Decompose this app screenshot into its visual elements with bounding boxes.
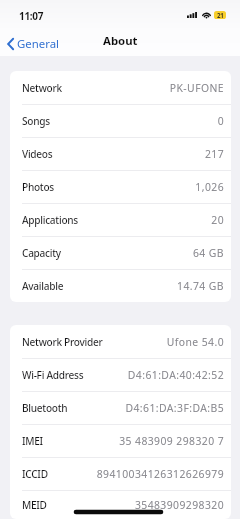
button[interactable]: Bluetooth [10,391,231,424]
button[interactable]: Photos [10,170,231,203]
staticText: 0 [217,114,224,128]
staticText: 21 [217,11,224,19]
button[interactable]: Capacity [10,236,231,269]
staticText: Videos [22,147,53,161]
staticText: IMEI [22,434,43,448]
staticText: ICCID [22,467,48,481]
staticText: Applications [22,213,78,227]
staticText: Capacity [22,246,61,260]
staticText: PK-UFONE [169,81,224,95]
button[interactable]: IMEI [10,424,231,457]
staticText: 35483909298320 [134,498,224,512]
button[interactable]: Available [10,269,231,302]
staticText: 14.74 GB [177,279,224,293]
button[interactable]: Network Provider [10,325,231,358]
button[interactable]: Network [10,71,231,104]
button[interactable]: Songs [10,104,231,137]
button[interactable]: ICCID [10,457,231,490]
staticText: Songs [22,114,50,128]
staticText: 11:07 [19,9,44,23]
staticText: 20 [211,213,224,227]
staticText: 35 483909 298320 7 [119,434,224,448]
staticText: Photos [22,180,54,194]
button[interactable]: Wi-Fi Address [10,358,231,391]
staticText: General [17,36,59,52]
button[interactable]: General [0,30,65,54]
staticText: D4:61:DA:40:42:52 [127,368,224,382]
staticText: MEID [22,498,47,512]
button[interactable]: Applications [10,203,231,236]
staticText: Wi-Fi Address [22,368,84,382]
staticText: 1,026 [195,180,224,194]
staticText: Bluetooth [22,401,68,415]
staticText: About [103,33,138,49]
button[interactable]: Videos [10,137,231,170]
staticText: Ufone 54.0 [166,335,224,349]
staticText: 64 GB [192,246,224,260]
staticText: 217 [204,147,224,161]
button[interactable]: MEID [10,490,231,519]
staticText: Network Provider [22,335,103,349]
staticText: Available [22,279,64,293]
staticText: 89410034126312626979 [96,467,224,481]
staticText: Network [22,81,62,95]
staticText: D4:61:DA:3F:DA:B5 [125,401,224,415]
